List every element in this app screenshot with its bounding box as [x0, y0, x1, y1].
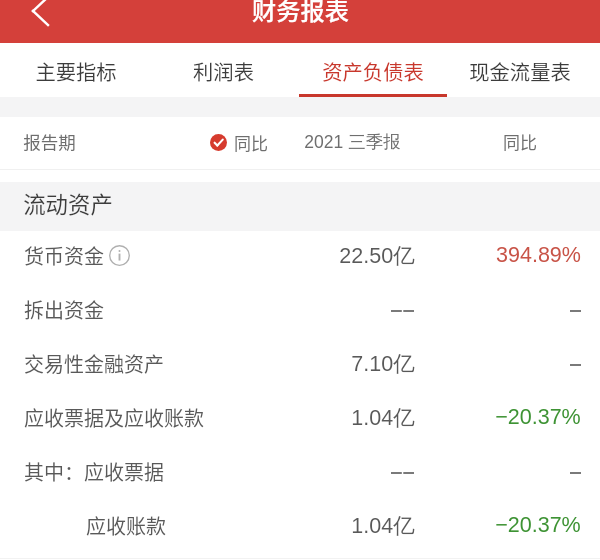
staticText: 1.04亿: [351, 512, 415, 539]
button[interactable]: 利润表: [149, 43, 297, 97]
staticText: 其中：应收票据: [24, 457, 164, 486]
button[interactable]: Back: [0, 0, 72, 43]
button[interactable]: 货币资金: [0, 231, 600, 285]
staticText: 22.50亿: [339, 242, 415, 269]
staticText: 财务报表: [252, 0, 349, 27]
staticText: 1.04亿: [351, 404, 415, 431]
button[interactable]: 拆出资金: [0, 285, 600, 339]
button[interactable]: 交易性金融资产: [0, 339, 600, 393]
staticText: 报告期: [23, 129, 76, 154]
staticText: 同比: [503, 129, 537, 154]
button[interactable]: 现金流量表: [446, 43, 594, 97]
button[interactable]: 应收票据及应收账款: [0, 393, 600, 447]
staticText: −20.37%: [495, 405, 581, 429]
staticText: 流动资产: [23, 187, 113, 219]
staticText: 利润表: [193, 56, 254, 85]
staticText: 货币资金: [24, 241, 104, 270]
staticText: 应收票据及应收账款: [24, 403, 204, 432]
staticText: 主要指标: [35, 56, 117, 85]
staticText: 7.10亿: [351, 350, 415, 377]
staticText: 交易性金融资产: [24, 349, 164, 378]
staticText: 394.89%: [496, 243, 581, 267]
staticText: 资产负债表: [322, 56, 424, 85]
button[interactable]: 应收账款: [0, 501, 600, 555]
button[interactable]: 同比: [210, 130, 268, 155]
button[interactable]: 资产负债表: [299, 43, 447, 97]
button[interactable]: 2021 三季报: [304, 131, 401, 153]
staticText: −20.37%: [495, 513, 581, 537]
button[interactable]: 其中：应收票据: [0, 447, 600, 501]
staticText: 现金流量表: [469, 56, 571, 85]
staticText: 应收账款: [86, 511, 166, 540]
staticText: 拆出资金: [24, 295, 104, 324]
staticText: 同比: [234, 130, 268, 155]
button[interactable]: 主要指标: [2, 43, 150, 97]
